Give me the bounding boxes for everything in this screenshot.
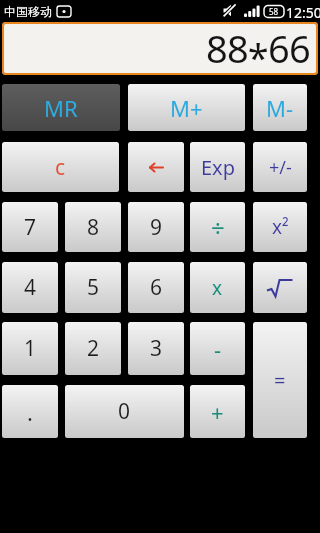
staticText: MR	[44, 93, 78, 123]
staticText: 7	[24, 213, 37, 242]
staticText: 9	[150, 213, 163, 242]
button[interactable]: 9	[128, 202, 184, 252]
staticText: x²	[272, 214, 289, 240]
staticText: 3	[150, 334, 163, 363]
button[interactable]: ÷	[190, 202, 245, 252]
staticText: 2	[87, 334, 100, 363]
button[interactable]: x²	[253, 202, 307, 252]
staticText: M+	[170, 93, 203, 123]
button[interactable]: M+	[128, 84, 245, 131]
button[interactable]: 8	[65, 202, 121, 252]
button[interactable]: -	[190, 322, 245, 375]
staticText: M-	[266, 93, 294, 123]
staticText: 0	[118, 397, 131, 426]
button[interactable]: 5	[65, 262, 121, 313]
staticText: 12:50	[286, 3, 320, 22]
staticText: 5	[87, 273, 100, 302]
button[interactable]: 2	[65, 322, 121, 375]
staticText: 6	[150, 273, 163, 302]
button[interactable]: 4	[2, 262, 58, 313]
staticText: Exp	[201, 154, 235, 181]
button[interactable]: 3	[128, 322, 184, 375]
staticText: -	[214, 334, 222, 364]
staticText: ÷	[211, 211, 225, 244]
button[interactable]: c	[2, 142, 119, 192]
button[interactable]: 7	[2, 202, 58, 252]
staticText: +	[211, 397, 224, 427]
button[interactable]: M-	[253, 84, 307, 131]
button[interactable]: =	[253, 322, 307, 438]
button[interactable]: 1	[2, 322, 58, 375]
staticText: 58	[269, 6, 279, 17]
button[interactable]: Exp	[190, 142, 245, 192]
button[interactable]: +	[190, 385, 245, 438]
staticText: 88*66	[206, 22, 310, 75]
staticText: =	[274, 367, 286, 394]
button[interactable]: 6	[128, 262, 184, 313]
button[interactable]: .	[2, 385, 58, 438]
button[interactable]	[128, 142, 184, 192]
button[interactable]	[253, 262, 307, 313]
staticText: 1	[24, 334, 37, 363]
button[interactable]: x	[190, 262, 245, 313]
staticText: c	[55, 153, 66, 182]
button[interactable]: 0	[65, 385, 184, 438]
staticText: +/-	[269, 155, 292, 180]
staticText: 中国移动	[4, 4, 52, 19]
staticText: 8	[87, 213, 100, 242]
staticText: x	[212, 275, 223, 301]
button[interactable]: +/-	[253, 142, 307, 192]
staticText: .	[27, 397, 33, 427]
button[interactable]: MR	[2, 84, 120, 131]
staticText: 4	[24, 273, 37, 302]
